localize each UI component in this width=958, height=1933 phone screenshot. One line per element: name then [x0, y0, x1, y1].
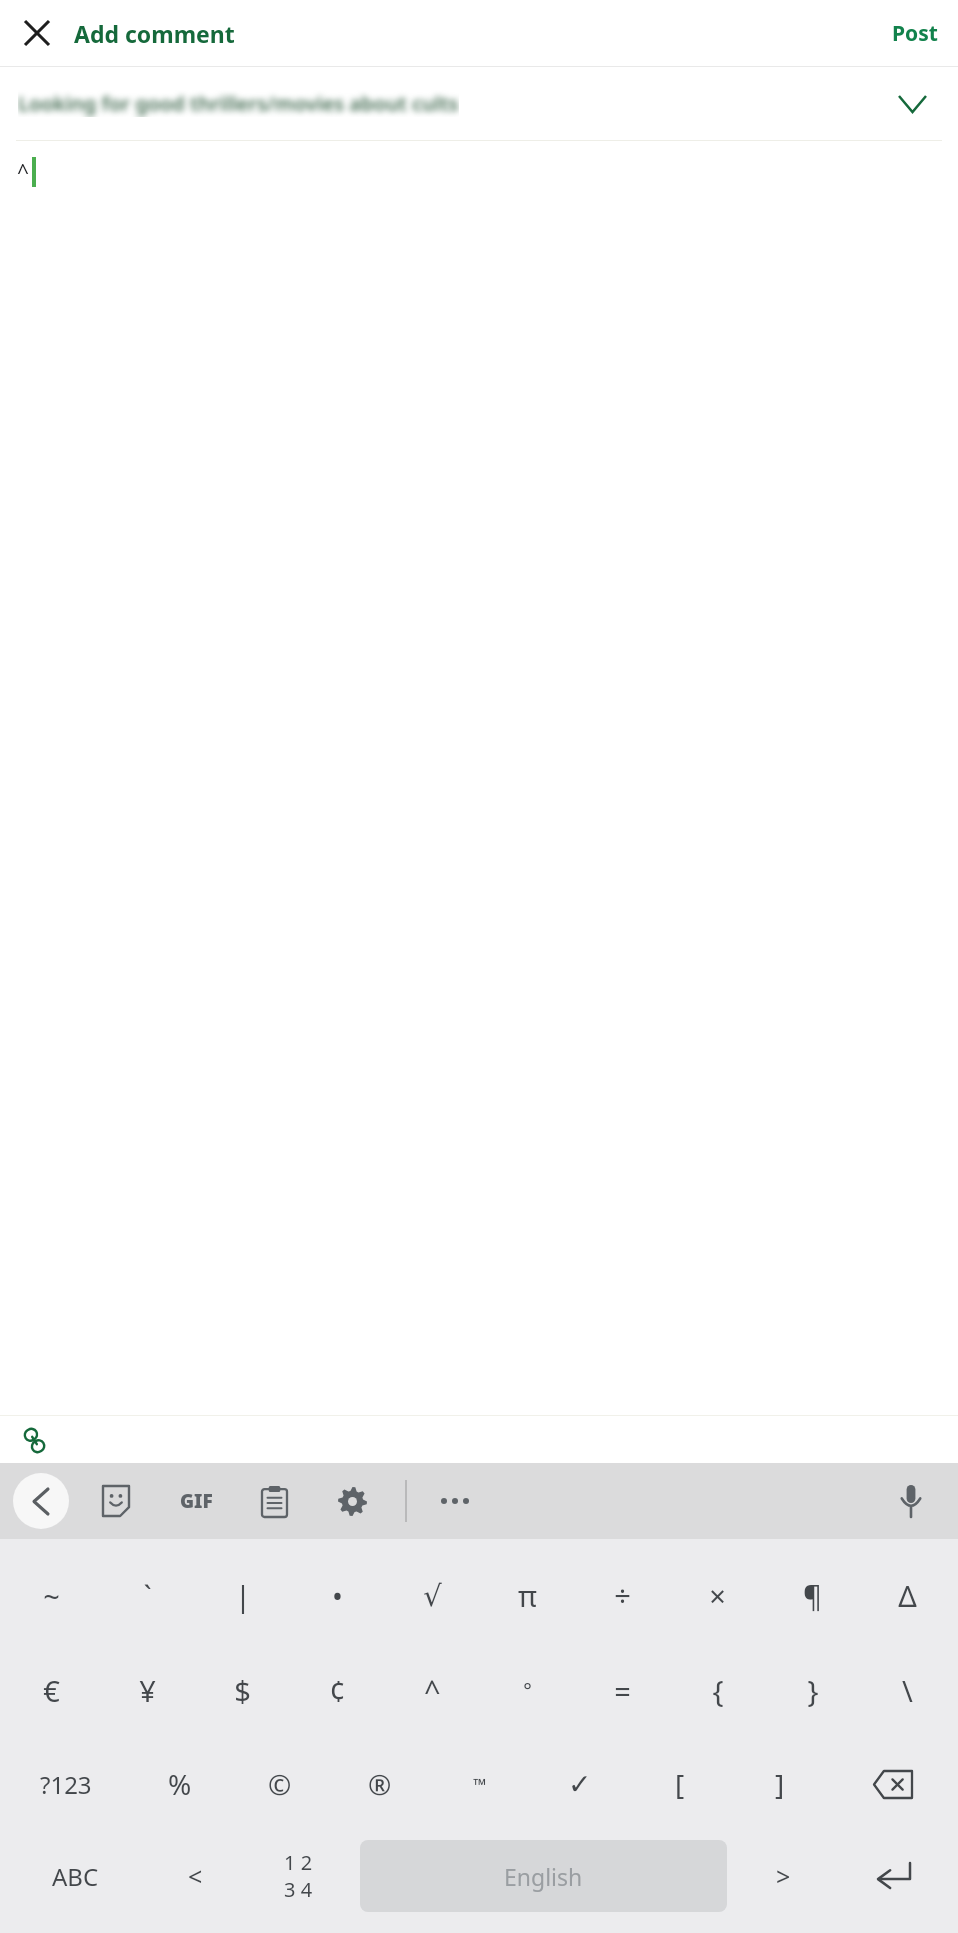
button[interactable]: 1 2: [243, 1830, 354, 1922]
button[interactable]: ?123: [3, 1738, 129, 1830]
button[interactable]: ™: [430, 1738, 530, 1830]
staticText: ™: [473, 1773, 487, 1796]
staticText: <: [188, 1859, 203, 1893]
other: Expand: [892, 84, 932, 124]
button[interactable]: ¶: [765, 1548, 860, 1643]
button[interactable]: Post: [872, 7, 958, 60]
staticText: °: [523, 1677, 532, 1704]
button[interactable]: ✓: [530, 1738, 630, 1830]
staticText: ]: [775, 1765, 785, 1803]
button[interactable]: Backspace: [830, 1738, 955, 1830]
staticText: {: [712, 1671, 724, 1710]
staticText: 1 2: [284, 1849, 313, 1876]
staticText: ^: [424, 1671, 441, 1710]
button[interactable]: $: [195, 1643, 290, 1738]
button[interactable]: ¢: [290, 1643, 385, 1738]
button[interactable]: ÷: [575, 1548, 670, 1643]
button[interactable]: |: [195, 1548, 290, 1643]
staticText: =: [614, 1671, 631, 1710]
staticText: •: [332, 1576, 343, 1615]
button[interactable]: Stickers: [81, 1469, 151, 1533]
staticText: ¶: [803, 1576, 822, 1615]
staticText: $: [234, 1671, 251, 1710]
button[interactable]: ABC: [3, 1830, 148, 1922]
button[interactable]: [: [630, 1738, 730, 1830]
button[interactable]: Looking for good thrillers/movies about …: [0, 67, 958, 140]
button[interactable]: ]: [730, 1738, 830, 1830]
button[interactable]: Voice input: [880, 1470, 942, 1532]
button[interactable]: ~: [3, 1548, 99, 1643]
staticText: }: [807, 1671, 819, 1710]
button[interactable]: Clipboard: [241, 1469, 307, 1533]
staticText: Add comment: [74, 18, 235, 49]
staticText: Post: [892, 19, 938, 48]
staticText: ®: [368, 1765, 392, 1803]
button[interactable]: \: [860, 1643, 955, 1738]
button[interactable]: Δ: [860, 1548, 955, 1643]
button[interactable]: <: [148, 1830, 243, 1922]
button[interactable]: Enter: [833, 1830, 955, 1922]
staticText: ©: [268, 1765, 292, 1803]
button[interactable]: English: [360, 1840, 727, 1912]
staticText: |: [235, 1576, 251, 1615]
staticText: `: [143, 1576, 152, 1615]
staticText: Looking for good thrillers/movies about …: [18, 90, 459, 117]
button[interactable]: =: [575, 1643, 670, 1738]
button[interactable]: {: [670, 1643, 765, 1738]
staticText: √: [423, 1579, 442, 1613]
staticText: €: [43, 1671, 60, 1710]
staticText: ÷: [614, 1576, 631, 1615]
button[interactable]: `: [99, 1548, 195, 1643]
button[interactable]: ¥: [99, 1643, 195, 1738]
staticText: [: [675, 1765, 685, 1803]
button[interactable]: >: [733, 1830, 833, 1922]
button[interactable]: GIF: [163, 1469, 229, 1533]
button[interactable]: ®: [330, 1738, 430, 1830]
staticText: ^: [17, 158, 30, 187]
button[interactable]: √: [385, 1548, 480, 1643]
button[interactable]: %: [129, 1738, 230, 1830]
button[interactable]: €: [3, 1643, 99, 1738]
button[interactable]: •: [290, 1548, 385, 1643]
button[interactable]: Insert link: [11, 1417, 57, 1463]
button[interactable]: °: [480, 1643, 575, 1738]
button[interactable]: ^: [385, 1643, 480, 1738]
staticText: \: [902, 1671, 913, 1710]
staticText: Δ: [898, 1576, 917, 1615]
staticText: ?123: [40, 1768, 92, 1801]
button[interactable]: Back: [13, 1473, 69, 1529]
button[interactable]: Close: [12, 8, 62, 58]
button[interactable]: }: [765, 1643, 860, 1738]
staticText: >: [776, 1859, 791, 1893]
staticText: 3 4: [284, 1876, 313, 1903]
staticText: π: [518, 1576, 537, 1615]
button[interactable]: π: [480, 1548, 575, 1643]
staticText: ABC: [52, 1860, 99, 1893]
staticText: ×: [709, 1576, 726, 1615]
staticText: %: [168, 1765, 192, 1803]
button[interactable]: Settings: [319, 1469, 385, 1533]
button[interactable]: ©: [230, 1738, 330, 1830]
staticText: ✓: [568, 1768, 592, 1801]
staticText: ¢: [329, 1671, 346, 1710]
staticText: ~: [43, 1576, 60, 1615]
button[interactable]: More options: [419, 1469, 491, 1533]
staticText: GIF: [180, 1488, 213, 1514]
staticText: ¥: [139, 1671, 156, 1710]
staticText: English: [504, 1861, 583, 1892]
button[interactable]: ×: [670, 1548, 765, 1643]
